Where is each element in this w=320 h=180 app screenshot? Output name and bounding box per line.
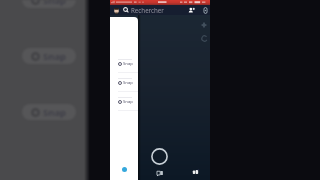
button[interactable]: Chat bbox=[155, 168, 165, 178]
button[interactable]: Snap bbox=[110, 95, 138, 114]
button[interactable]: Snap bbox=[22, 48, 76, 64]
button[interactable]: Snap bbox=[110, 76, 138, 95]
staticText: Rechercher bbox=[131, 6, 164, 14]
button[interactable]: Flash bbox=[199, 20, 209, 30]
button[interactable]: Flip camera bbox=[199, 33, 209, 43]
button[interactable]: Snap bbox=[22, 0, 76, 8]
button[interactable]: Profile bbox=[113, 7, 120, 14]
button[interactable]: Snap bbox=[22, 104, 76, 120]
staticText: Snap bbox=[43, 0, 67, 7]
button[interactable]: Snap bbox=[110, 57, 138, 76]
button[interactable]: More options bbox=[201, 6, 209, 14]
staticText: Snap bbox=[123, 61, 133, 67]
button[interactable]: Stories bbox=[191, 167, 201, 177]
staticText: Snap bbox=[43, 106, 67, 119]
button[interactable]: Add friend bbox=[187, 6, 196, 15]
staticText: Snap bbox=[123, 99, 133, 105]
staticText: Snap bbox=[123, 80, 133, 86]
button[interactable]: Capture bbox=[151, 148, 168, 165]
staticText: Snap bbox=[43, 50, 67, 63]
